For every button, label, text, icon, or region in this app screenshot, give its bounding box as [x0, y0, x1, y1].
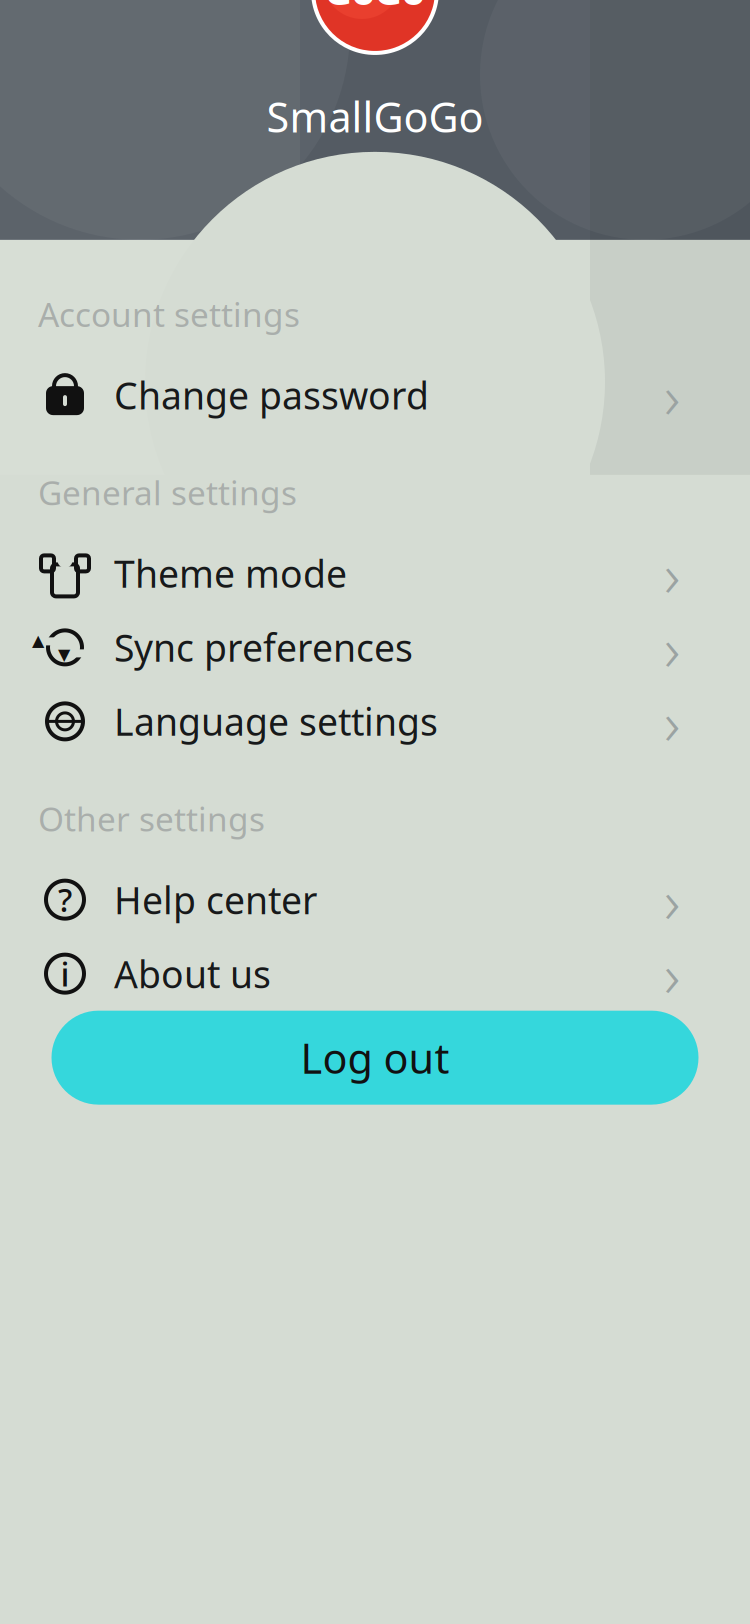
button[interactable]: ▲	[0, 610, 750, 684]
button[interactable]: ?	[0, 863, 750, 937]
staticText: ›	[664, 354, 680, 436]
staticText: SmallGoGo	[266, 89, 483, 144]
staticText: Change password	[114, 370, 429, 420]
button[interactable]: i	[0, 937, 750, 1011]
staticText: ›	[664, 607, 680, 688]
button[interactable]: Language settings	[0, 684, 750, 758]
staticText: ▲	[32, 631, 72, 649]
staticText: Log out	[300, 1030, 449, 1085]
staticText: Language settings	[114, 697, 438, 746]
staticText: Sync preferences	[114, 623, 413, 672]
staticText: ?	[58, 878, 72, 921]
staticText: Theme mode	[114, 549, 347, 598]
staticText: Other settings	[38, 796, 265, 841]
staticText: Account settings	[38, 292, 300, 336]
staticText: General settings	[38, 470, 297, 514]
staticText: ›	[664, 681, 680, 762]
staticText: Help center	[114, 875, 317, 924]
button[interactable]: Log out	[51, 1011, 698, 1105]
staticText: About us	[114, 949, 271, 998]
staticText: ›	[664, 533, 680, 614]
button[interactable]: Edit profile photo	[305, 0, 445, 59]
button[interactable]: Theme mode	[0, 536, 750, 610]
staticText: ›	[664, 933, 680, 1014]
staticText: ›	[664, 859, 680, 940]
button[interactable]: Change password	[0, 358, 750, 432]
staticText: i	[60, 951, 69, 996]
staticText: GoGo	[325, 0, 425, 15]
staticText: ▼	[58, 645, 98, 663]
